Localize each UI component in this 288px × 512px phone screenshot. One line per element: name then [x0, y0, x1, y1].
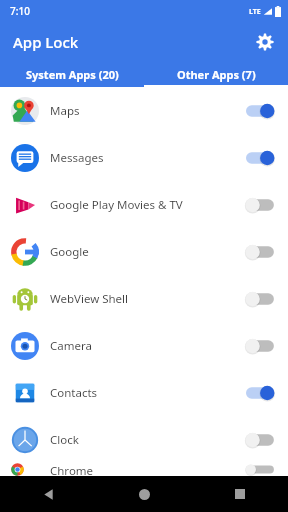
button[interactable]: Other Apps (7): [144, 62, 288, 87]
staticText: Contacts: [50, 385, 246, 401]
staticText: WebView Shell: [50, 291, 246, 307]
staticText: Camera: [50, 338, 246, 354]
button[interactable]: Clock: [0, 416, 288, 463]
staticText: System Apps (20): [26, 67, 119, 82]
staticText: Messages: [50, 150, 246, 166]
button[interactable]: Lock disabled: [246, 290, 276, 308]
button[interactable]: WebView Shell: [0, 275, 288, 322]
staticText: Chrome: [50, 463, 246, 476]
button[interactable]: Messages: [0, 134, 288, 181]
button[interactable]: Home: [96, 476, 192, 512]
staticText: Maps: [50, 103, 246, 119]
button[interactable]: Lock enabled: [246, 149, 276, 167]
button[interactable]: Lock disabled: [246, 196, 276, 214]
staticText: Google Play Movies & TV: [50, 197, 246, 213]
button[interactable]: Lock disabled: [246, 337, 276, 355]
button[interactable]: Lock disabled: [246, 243, 276, 261]
button[interactable]: Lock disabled: [246, 431, 276, 449]
button[interactable]: Lock enabled: [246, 102, 276, 120]
button[interactable]: Google: [0, 228, 288, 275]
button[interactable]: Recent apps: [192, 476, 288, 512]
staticText: Google: [50, 244, 246, 260]
staticText: Clock: [50, 432, 246, 448]
button[interactable]: Contacts: [0, 369, 288, 416]
staticText: App Lock: [13, 32, 79, 52]
button[interactable]: Chrome: [0, 463, 288, 476]
button[interactable]: Google Play Movies & TV: [0, 181, 288, 228]
button[interactable]: Maps: [0, 87, 288, 134]
button[interactable]: Lock enabled: [246, 384, 276, 402]
button[interactable]: System Apps (20): [0, 62, 144, 87]
button[interactable]: Camera: [0, 322, 288, 369]
staticText: LTE: [249, 7, 261, 17]
button[interactable]: Back: [0, 476, 96, 512]
staticText: 7:10: [10, 4, 30, 18]
button[interactable]: Settings: [250, 27, 280, 57]
button[interactable]: Lock disabled: [246, 463, 276, 476]
staticText: Other Apps (7): [177, 67, 256, 82]
